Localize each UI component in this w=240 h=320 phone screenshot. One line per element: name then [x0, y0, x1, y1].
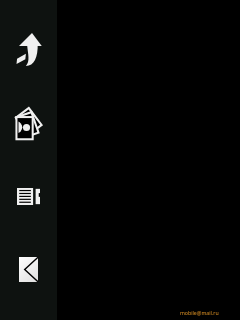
- staticText: mobile@mail.ru: [180, 309, 219, 316]
- button[interactable]: Up: [16, 32, 42, 66]
- button[interactable]: News: [17, 188, 40, 205]
- button[interactable]: Cards: [15, 103, 44, 140]
- button[interactable]: Mail: [19, 257, 38, 282]
